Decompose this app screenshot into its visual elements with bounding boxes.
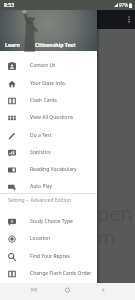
button[interactable]: Contact Us xyxy=(0,57,97,74)
staticText: Auto Play xyxy=(30,183,53,190)
staticText: Setting -- Advanced Edition xyxy=(8,197,72,204)
button[interactable]: Home xyxy=(60,283,74,297)
button[interactable]: Citizenship Test xyxy=(30,38,81,50)
staticText: pen xyxy=(97,200,133,227)
staticText: Reading Vocabulary xyxy=(30,166,77,173)
button[interactable]: Location xyxy=(0,230,97,247)
button[interactable]: Change Flash Cards Order xyxy=(0,265,97,282)
staticText: Do a Test xyxy=(30,132,52,139)
button[interactable]: Back xyxy=(96,283,110,297)
staticText: Citizenship Test xyxy=(35,41,76,48)
staticText: m xyxy=(97,224,116,251)
staticText: Find Your Repres. xyxy=(30,253,71,260)
staticText: Contact Us xyxy=(30,62,56,69)
button[interactable]: Your State Info. xyxy=(0,75,97,92)
button[interactable]: Recent apps xyxy=(27,283,41,297)
staticText: 8:53 xyxy=(4,2,14,9)
button[interactable]: Study Choice Type xyxy=(0,213,97,230)
button[interactable]: Statistics xyxy=(0,144,97,161)
staticText: Statistics xyxy=(30,149,51,156)
button[interactable]: Learn xyxy=(0,38,25,50)
staticText: Your State Info. xyxy=(30,80,67,87)
button[interactable]: View All Questions xyxy=(0,109,97,126)
button[interactable]: Auto Play xyxy=(0,178,97,195)
button[interactable]: Flash Cards xyxy=(0,92,97,109)
button[interactable]: Reading Vocabulary xyxy=(0,161,97,178)
staticText: View All Questions xyxy=(30,114,74,121)
button[interactable]: Find Your Repres. xyxy=(0,248,97,265)
staticText: Study Choice Type xyxy=(30,218,73,225)
staticText: Learn xyxy=(5,41,20,48)
button[interactable]: Do a Test xyxy=(0,127,97,144)
other: More options xyxy=(128,16,130,23)
staticText: 97% xyxy=(119,2,128,8)
staticText: Change Flash Cards Order xyxy=(30,270,92,277)
staticText: Flash Cards xyxy=(30,97,57,104)
staticText: Location xyxy=(30,235,51,242)
